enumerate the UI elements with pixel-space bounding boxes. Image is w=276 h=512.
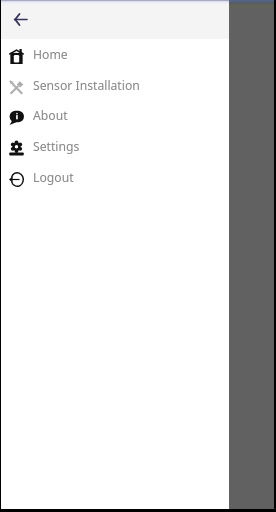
staticText: Home — [33, 46, 68, 63]
button[interactable]: Logout — [0, 162, 229, 192]
staticText: Sensor Installation — [33, 77, 140, 94]
button[interactable]: Sensor Installation — [0, 70, 229, 100]
button[interactable]: Settings — [0, 131, 229, 161]
button[interactable]: About — [0, 100, 229, 130]
staticText: Settings — [33, 138, 80, 155]
button[interactable]: Home — [0, 39, 229, 69]
button[interactable]: Back — [8, 7, 33, 32]
staticText: Logout — [33, 169, 74, 186]
staticText: About — [33, 107, 68, 124]
